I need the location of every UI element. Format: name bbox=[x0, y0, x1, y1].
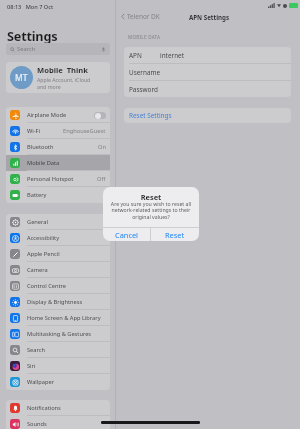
button[interactable]: Back to Telenor DK bbox=[119, 10, 162, 23]
staticText: Search bbox=[17, 45, 36, 53]
button[interactable]: Personal Hotspot bbox=[6, 171, 110, 187]
staticText: Notifications bbox=[27, 404, 106, 412]
button[interactable]: Apple Pencil bbox=[6, 246, 110, 262]
staticText: On bbox=[98, 143, 106, 151]
button[interactable]: Wallpaper bbox=[6, 374, 110, 390]
staticText: Multitasking & Gestures bbox=[27, 330, 106, 338]
button[interactable]: Accessibility bbox=[6, 230, 110, 246]
staticText: Siri bbox=[27, 362, 106, 370]
staticText: Wi-Fi bbox=[27, 127, 63, 135]
button[interactable]: Sounds bbox=[6, 416, 110, 429]
staticText: Airplane Mode bbox=[27, 111, 94, 119]
staticText: Sounds bbox=[27, 420, 106, 428]
staticText: Reset bbox=[165, 230, 185, 240]
button[interactable]: Reset Settings bbox=[124, 108, 291, 123]
staticText: Wallpaper bbox=[27, 378, 106, 386]
staticText: APN Settings bbox=[189, 13, 230, 21]
button[interactable]: Search bbox=[6, 342, 110, 358]
button[interactable]: Mobile Data bbox=[6, 155, 110, 171]
staticText: Bluetooth bbox=[27, 143, 98, 151]
staticText: and more bbox=[37, 83, 61, 90]
button[interactable]: Siri bbox=[6, 358, 110, 374]
staticText: Cancel bbox=[115, 230, 139, 240]
staticText: MT bbox=[15, 72, 28, 84]
staticText: General bbox=[27, 218, 106, 226]
button[interactable]: Home Screen & App Library bbox=[6, 310, 110, 326]
button[interactable]: Reset bbox=[151, 228, 199, 241]
button[interactable]: Wi-Fi bbox=[6, 123, 110, 139]
staticText: EnghouseGuest bbox=[63, 127, 106, 135]
staticText: Are you sure you wish to reset all netwo… bbox=[106, 200, 196, 221]
staticText: 08:13 Mon 7 Oct bbox=[7, 3, 54, 11]
staticText: Mobile Think bbox=[37, 65, 88, 75]
button[interactable]: Control Centre bbox=[6, 278, 110, 294]
staticText: Telenor DK bbox=[127, 12, 160, 21]
staticText: Apple Pencil bbox=[27, 250, 106, 258]
staticText: Username bbox=[129, 68, 160, 77]
button[interactable]: Battery bbox=[6, 187, 110, 203]
button[interactable]: Multitasking & Gestures bbox=[6, 326, 110, 342]
staticText: Mobile Data bbox=[27, 159, 106, 167]
staticText: Reset Settings bbox=[129, 111, 172, 120]
staticText: Password bbox=[129, 85, 160, 94]
button[interactable]: Search bbox=[6, 43, 110, 55]
staticText: Off bbox=[97, 175, 106, 183]
staticText: APN bbox=[129, 51, 160, 60]
button[interactable]: Camera bbox=[6, 262, 110, 278]
button[interactable]: Cancel bbox=[103, 228, 150, 241]
button[interactable]: Airplane Mode bbox=[6, 107, 110, 123]
staticText: Control Centre bbox=[27, 282, 106, 290]
button[interactable]: Bluetooth bbox=[6, 139, 110, 155]
staticText: Battery bbox=[27, 191, 106, 199]
staticText: Display & Brightness bbox=[27, 298, 106, 306]
button[interactable]: MT bbox=[6, 62, 110, 93]
button[interactable]: Display & Brightness bbox=[6, 294, 110, 310]
staticText: Accessibility bbox=[27, 234, 106, 242]
staticText: Camera bbox=[27, 266, 106, 274]
staticText: Reset bbox=[103, 192, 199, 202]
staticText: MOBILE DATA bbox=[128, 34, 161, 40]
staticText: internet bbox=[160, 51, 185, 60]
staticText: Home Screen & App Library bbox=[27, 314, 106, 322]
staticText: Search bbox=[27, 346, 106, 354]
staticText: Settings bbox=[7, 27, 58, 44]
button[interactable]: General bbox=[6, 214, 110, 230]
staticText: Apple Account, iCloud bbox=[37, 76, 91, 83]
staticText: Personal Hotspot bbox=[27, 175, 97, 183]
button[interactable]: Notifications bbox=[6, 400, 110, 416]
